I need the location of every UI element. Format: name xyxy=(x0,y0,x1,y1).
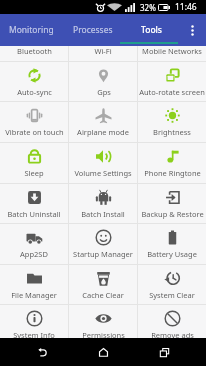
staticText: Brightness xyxy=(153,127,191,137)
button[interactable]: Vibrate on touch xyxy=(0,102,68,142)
button[interactable]: Mobile Networks xyxy=(138,46,206,61)
button[interactable]: More options xyxy=(179,14,206,46)
staticText: 11:46 xyxy=(175,1,197,13)
staticText: Battery Usage xyxy=(147,249,197,259)
button[interactable]: Back xyxy=(23,338,61,366)
staticText: Sleep xyxy=(24,168,44,178)
button[interactable]: File Manager xyxy=(0,265,68,305)
button[interactable]: Remove ads xyxy=(138,305,206,338)
button[interactable]: Startup Manager xyxy=(69,224,137,264)
button[interactable]: Cache Clear xyxy=(69,265,137,305)
staticText: Phone Ringtone xyxy=(144,168,201,178)
staticText: Gps xyxy=(97,87,111,97)
staticText: Remove ads xyxy=(151,330,194,338)
staticText: File Manager xyxy=(11,290,57,300)
button[interactable]: Battery Usage xyxy=(138,224,206,264)
button[interactable]: Permissions xyxy=(69,305,137,338)
staticText: Auto-rotate screen xyxy=(139,87,205,97)
button[interactable]: Auto-rotate screen xyxy=(138,62,206,102)
button[interactable]: Brightness xyxy=(138,102,206,142)
staticText: Vibrate on touch xyxy=(5,127,64,137)
staticText: Processes xyxy=(73,24,113,36)
button[interactable]: App2SD xyxy=(0,224,68,264)
staticText: Monitoring xyxy=(9,24,54,36)
staticText: System Info xyxy=(13,330,55,338)
button[interactable]: Monitoring xyxy=(0,14,63,46)
staticText: Cache Clear xyxy=(82,290,124,300)
button[interactable]: Auto-sync xyxy=(0,62,68,102)
staticText: Permissions xyxy=(82,330,125,338)
staticText: Backup & Restore xyxy=(141,209,204,219)
button[interactable]: Tools xyxy=(123,14,179,46)
button[interactable]: Backup & Restore xyxy=(138,184,206,224)
staticText: Mobile Networks xyxy=(142,46,202,56)
button[interactable]: System Clear xyxy=(138,265,206,305)
staticText: 32% xyxy=(140,2,156,13)
button[interactable]: System Info xyxy=(0,305,68,338)
staticText: Auto-sync xyxy=(17,87,52,97)
button[interactable]: Volume Settings xyxy=(69,143,137,183)
staticText: Batch Install xyxy=(81,209,125,219)
button[interactable]: Batch Uninstall xyxy=(0,184,68,224)
staticText: Bluetooth xyxy=(17,46,52,56)
button[interactable]: Batch Install xyxy=(69,184,137,224)
button[interactable]: Sleep xyxy=(0,143,68,183)
staticText: System Clear xyxy=(149,290,195,300)
button[interactable]: Airplane mode xyxy=(69,102,137,142)
staticText: Startup Manager xyxy=(73,249,133,259)
button[interactable]: Processes xyxy=(63,14,123,46)
button[interactable]: Gps xyxy=(69,62,137,102)
button[interactable]: Phone Ringtone xyxy=(138,143,206,183)
staticText: Airplane mode xyxy=(77,127,129,137)
staticText: Batch Uninstall xyxy=(7,209,61,219)
staticText: Volume Settings xyxy=(74,168,132,178)
button[interactable]: Wi-Fi xyxy=(69,46,137,61)
button[interactable]: Home xyxy=(84,338,122,366)
staticText: Wi-Fi xyxy=(94,46,112,56)
staticText: Tools xyxy=(141,24,162,36)
button[interactable]: Bluetooth xyxy=(0,46,68,61)
button[interactable]: Recent apps xyxy=(145,338,183,366)
staticText: App2SD xyxy=(20,249,48,259)
